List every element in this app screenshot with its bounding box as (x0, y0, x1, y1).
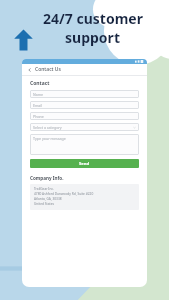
button[interactable]: Type your message (30, 134, 139, 155)
staticText: United States (34, 202, 55, 206)
button[interactable]: Up (14, 29, 33, 51)
button[interactable]: Phone (30, 112, 139, 120)
button[interactable]: Name (30, 90, 139, 98)
staticText: 24/7 customer (43, 9, 143, 28)
staticText: Name (33, 92, 44, 97)
staticText: Select a category (33, 125, 62, 130)
staticText: Contact Us (35, 66, 61, 73)
button[interactable]: Email (30, 101, 139, 109)
staticText: Phone (33, 114, 44, 119)
button[interactable]: Select a category (30, 123, 139, 131)
staticText: Type your message (33, 136, 66, 141)
staticText: Contact (30, 80, 50, 87)
button[interactable]: Send (30, 159, 139, 168)
button[interactable]: Back (26, 66, 33, 73)
staticText: Company Info. (30, 175, 64, 181)
staticText: support (65, 28, 120, 47)
staticText: Email (33, 103, 43, 108)
staticText: TrailGear Inc. (34, 187, 54, 191)
staticText: Send (79, 161, 90, 167)
staticText: Atlanta, GA, 30338 (34, 197, 62, 201)
staticText: 4780 Ashford Dunwoody Rd, Suite #220 (34, 192, 94, 196)
